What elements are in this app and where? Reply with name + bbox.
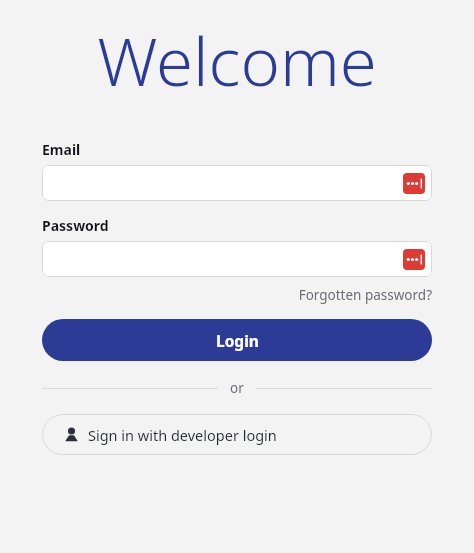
button[interactable]: Password field, autofill [42, 241, 432, 277]
button[interactable]: Email field, autofill [42, 165, 432, 201]
staticText: or [230, 379, 244, 397]
other: Autofill password [403, 173, 425, 194]
staticText: Email [42, 140, 81, 159]
other: Autofill password [403, 249, 425, 270]
button[interactable]: Login [42, 319, 432, 361]
staticText: Password [42, 216, 109, 235]
staticText: Forgotten password? [42, 286, 432, 304]
staticText: Welcome [0, 14, 474, 105]
staticText: Login [216, 330, 259, 351]
button[interactable]: Forgotten password? [42, 286, 432, 304]
button[interactable]: Sign in with developer login [42, 414, 432, 455]
staticText: Sign in with developer login [88, 425, 277, 445]
